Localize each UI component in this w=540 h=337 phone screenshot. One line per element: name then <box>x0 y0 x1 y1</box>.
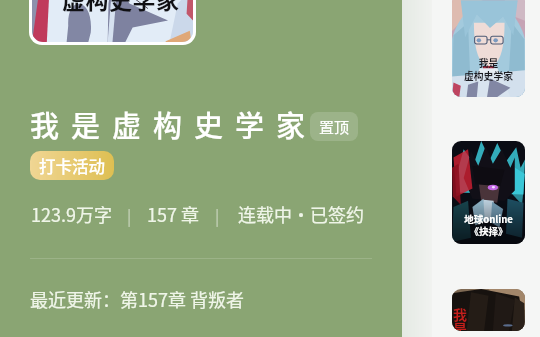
staticText: | <box>215 203 220 226</box>
button[interactable]: 我是 虚构史学家 <box>452 0 525 97</box>
button[interactable]: 打卡活动 <box>30 151 114 180</box>
staticText: 连载中·已签约 <box>238 201 364 227</box>
staticText: 置顶 <box>319 116 350 138</box>
button[interactable]: 地球online 《抉择》 <box>452 141 525 244</box>
staticText: 打卡活动 <box>39 154 105 178</box>
staticText: 我 是 <box>453 304 467 331</box>
staticText: 虚构史学家 <box>62 0 180 15</box>
staticText: 我是虚构史学家 <box>30 103 318 145</box>
button[interactable]: 置顶 <box>310 112 358 141</box>
staticText: 157 章 <box>147 201 200 227</box>
staticText: 地球online 《抉择》 <box>464 212 513 237</box>
staticText: 最近更新：第157章 背叛者 <box>30 286 245 312</box>
staticText: | <box>127 203 132 226</box>
staticText: 我是 虚构史学家 <box>464 56 513 82</box>
staticText: 123.9万字 <box>31 201 112 227</box>
button[interactable]: 虚构史学家 <box>32 0 193 42</box>
button[interactable]: 我 是 <box>452 289 525 331</box>
